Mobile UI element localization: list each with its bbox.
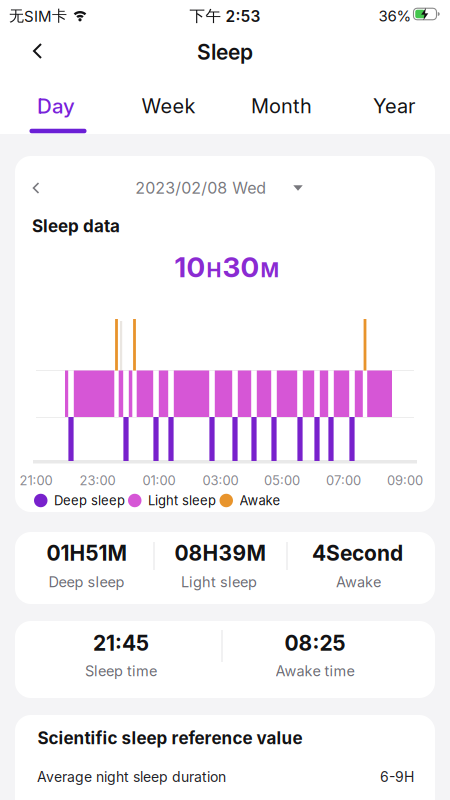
- staticText: Sleep: [197, 39, 253, 65]
- staticText: Week: [141, 94, 195, 118]
- staticText: 07:00: [326, 473, 361, 488]
- staticText: 36%: [378, 7, 411, 25]
- button[interactable]: Choose date: [135, 178, 303, 198]
- staticText: Day: [37, 94, 75, 118]
- staticText: Scientific sleep reference value: [37, 728, 302, 748]
- staticText: Average night sleep duration: [37, 768, 226, 785]
- staticText: 下午 2:53: [189, 6, 260, 26]
- staticText: 01:00: [142, 473, 175, 488]
- staticText: 2023/02/08 Wed: [135, 178, 266, 198]
- staticText: 23:00: [79, 473, 115, 488]
- button[interactable]: Day: [0, 84, 112, 128]
- staticText: 30: [222, 250, 259, 284]
- staticText: 6-9H: [380, 768, 414, 785]
- staticText: 08H39M: [174, 540, 265, 566]
- staticText: 08:25: [284, 630, 345, 656]
- staticText: Sleep data: [32, 216, 120, 236]
- staticText: Deep sleep: [54, 493, 125, 508]
- staticText: Awake: [239, 493, 280, 508]
- staticText: 10: [174, 250, 205, 284]
- button[interactable]: Month: [225, 84, 337, 128]
- button[interactable]: Back: [20, 33, 54, 69]
- staticText: 05:00: [264, 473, 300, 488]
- staticText: Light sleep: [148, 493, 216, 508]
- button[interactable]: Year: [338, 84, 450, 128]
- staticText: Light sleep: [181, 573, 257, 591]
- staticText: 21:45: [93, 630, 149, 656]
- staticText: Awake: [336, 573, 381, 591]
- staticText: 无SIM卡: [9, 7, 67, 25]
- staticText: M: [260, 258, 279, 282]
- staticText: 4Second: [312, 540, 403, 566]
- staticText: Year: [373, 94, 415, 118]
- staticText: Awake time: [275, 662, 354, 680]
- staticText: Sleep time: [85, 662, 157, 680]
- button[interactable]: Week: [112, 84, 224, 128]
- staticText: H: [206, 258, 221, 282]
- staticText: Month: [251, 94, 312, 118]
- staticText: 21:00: [19, 473, 52, 488]
- button[interactable]: Previous day: [21, 174, 51, 202]
- staticText: 03:00: [202, 473, 238, 488]
- staticText: 01H51M: [46, 540, 126, 566]
- staticText: 09:00: [387, 473, 423, 488]
- staticText: Deep sleep: [48, 573, 124, 591]
